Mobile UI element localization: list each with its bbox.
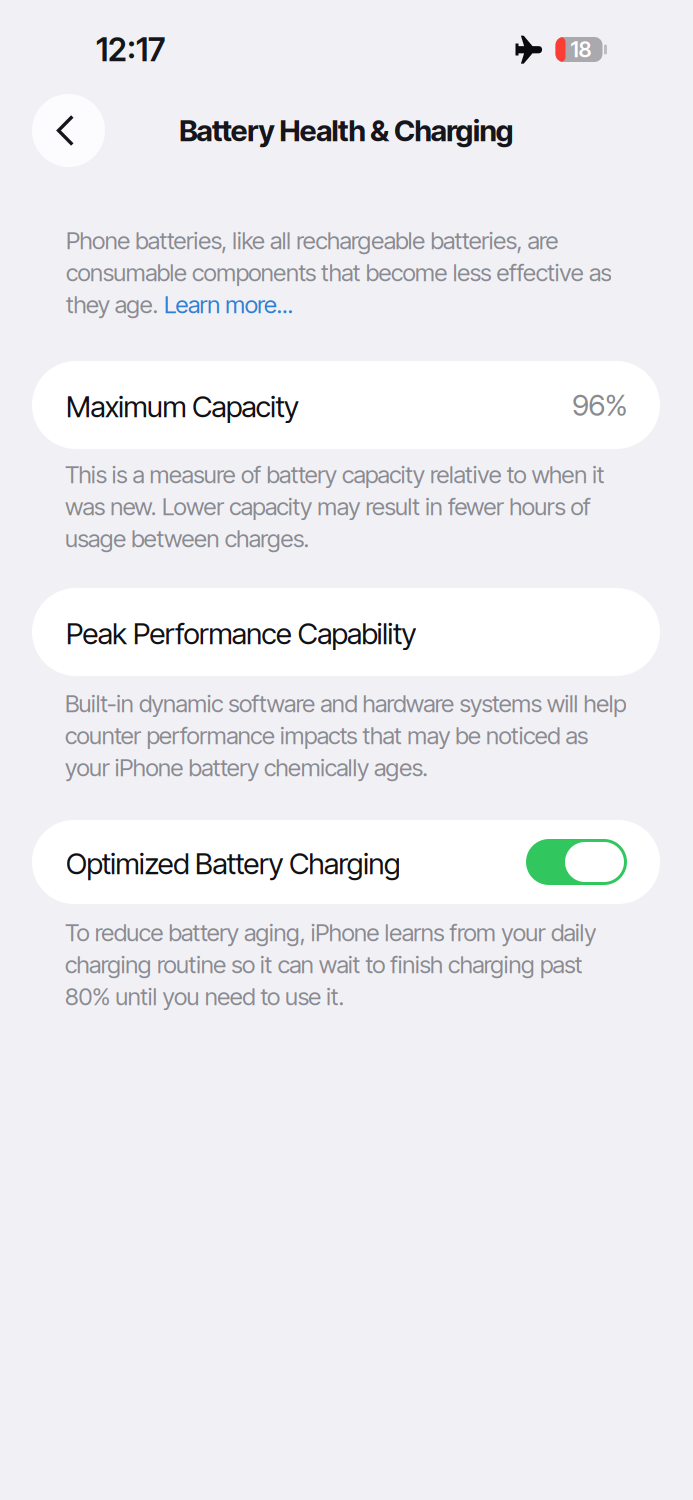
staticText: Battery Health & Charging — [179, 113, 514, 148]
staticText: was new. Lower capacity may result in fe… — [65, 492, 591, 521]
staticText: your iPhone battery chemically ages. — [65, 753, 428, 782]
staticText: Built-in dynamic software and hardware s… — [65, 689, 626, 718]
staticText: To reduce battery aging, iPhone learns f… — [65, 918, 596, 947]
button[interactable]: Maximum Capacity — [32, 361, 660, 449]
staticText: 80% until you need to use it. — [65, 982, 344, 1011]
staticText: Peak Performance Capability — [66, 616, 416, 651]
staticText: 96% — [572, 387, 627, 423]
staticText: This is a measure of battery capacity re… — [65, 460, 605, 489]
staticText: consumable components that become less e… — [66, 258, 611, 287]
staticText: 12:17 — [96, 30, 165, 69]
button[interactable]: Peak Performance Capability — [32, 588, 660, 676]
staticText: usage between charges. — [65, 524, 309, 553]
staticText: Learn more... — [164, 290, 293, 319]
staticText: they age. — [66, 290, 164, 319]
staticText: charging routine so it can wait to finis… — [65, 950, 583, 979]
button[interactable]: Optimized Battery Charging — [32, 820, 660, 904]
button[interactable]: Optimized Battery Charging, on — [526, 839, 627, 885]
staticText: Optimized Battery Charging — [66, 846, 401, 881]
staticText: Maximum Capacity — [66, 389, 299, 424]
button[interactable]: Learn more... — [164, 290, 293, 319]
staticText: 18 — [570, 37, 591, 62]
staticText: counter performance impacts that may be … — [65, 721, 588, 750]
button[interactable]: Back — [32, 94, 105, 167]
staticText: Phone batteries, like all rechargeable b… — [66, 226, 559, 255]
